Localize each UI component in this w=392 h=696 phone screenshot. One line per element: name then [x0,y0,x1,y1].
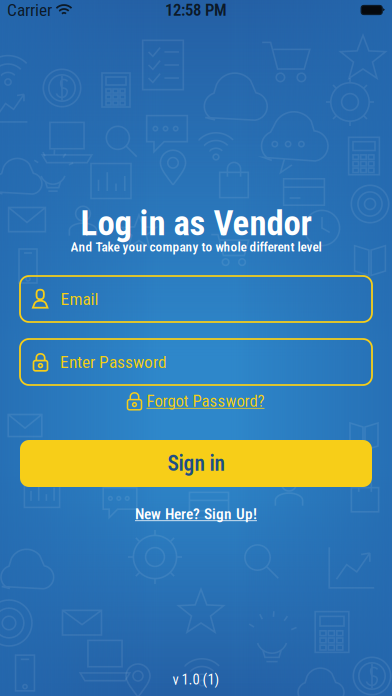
button[interactable]: Forgot Password? [127,391,264,411]
staticText: Log in as Vendor [80,203,311,244]
button[interactable]: Enter Password [20,339,372,385]
staticText: 12:58 PM [165,0,227,20]
button[interactable]: Email [20,276,372,322]
staticText: Email [60,289,98,309]
staticText: Forgot Password? [146,391,264,411]
staticText: v 1.0 (1) [172,671,219,688]
staticText: Sign in [167,451,224,476]
staticText: New Here? Sign Up! [135,505,257,523]
staticText: Enter Password [60,352,167,372]
staticText: And Take your company to whole different… [70,239,321,255]
button[interactable]: Sign in [20,440,372,487]
staticText: Carrier [7,0,52,20]
button[interactable]: New Here? Sign Up! [135,504,257,524]
